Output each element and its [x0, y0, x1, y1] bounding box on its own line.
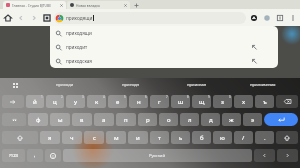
staticText: приискан [187, 82, 207, 88]
button[interactable]: в [72, 113, 92, 126]
button[interactable]: Comma [27, 149, 43, 162]
staticText: к [95, 98, 99, 106]
button[interactable]: ч [62, 131, 82, 144]
button[interactable]: Backspace [276, 95, 298, 108]
staticText: 6 [145, 95, 147, 99]
button[interactable]: приходящи [54, 12, 246, 24]
button[interactable]: а [94, 113, 114, 126]
button[interactable]: Tab [2, 95, 24, 108]
button[interactable]: Right [277, 149, 298, 162]
button[interactable]: п [116, 113, 136, 126]
button[interactable]: Search [264, 113, 298, 126]
button[interactable]: к [87, 95, 106, 108]
staticText: м [114, 134, 119, 142]
button[interactable]: Shift [2, 131, 38, 144]
button[interactable]: Left [254, 149, 275, 162]
button[interactable]: у [66, 95, 85, 108]
button[interactable]: я [40, 131, 60, 144]
staticText: 8 [187, 95, 189, 99]
staticText: Русский [149, 153, 166, 159]
button[interactable]: щ [192, 95, 211, 108]
button[interactable]: с [84, 131, 104, 144]
staticText: Новая вкладка [76, 3, 100, 7]
button[interactable]: Extensions [273, 11, 286, 24]
staticText: ь [179, 134, 183, 142]
button[interactable]: . [255, 131, 274, 144]
button[interactable]: приходит [50, 40, 278, 54]
button[interactable]: г [150, 95, 169, 108]
staticText: 0 [229, 95, 231, 99]
staticText: приходская [66, 58, 92, 64]
button[interactable]: Keyboard toolbar [0, 78, 31, 92]
staticText: приходи [56, 82, 74, 88]
button[interactable]: л [180, 113, 199, 126]
button[interactable]: Новая вкладка [67, 1, 130, 9]
staticText: щ [199, 98, 205, 106]
button[interactable]: New tab [132, 1, 140, 9]
staticText: ъ [263, 98, 267, 106]
staticText: с [93, 134, 96, 142]
button[interactable]: ш [171, 95, 190, 108]
button[interactable]: ю [213, 131, 232, 144]
staticText: приходит [66, 44, 88, 50]
button[interactable]: ъ [255, 95, 274, 108]
button[interactable]: Caps lock [2, 113, 26, 126]
button[interactable]: ы [50, 113, 70, 126]
staticText: . [264, 134, 266, 142]
staticText: 3 [82, 95, 84, 99]
button[interactable]: и [128, 131, 148, 144]
button[interactable]: More options [286, 11, 299, 24]
staticText: ш [178, 98, 184, 106]
button[interactable]: ц [46, 95, 64, 108]
button[interactable]: Русский [63, 149, 252, 162]
button[interactable]: р [138, 113, 157, 126]
button[interactable]: Account [247, 11, 260, 24]
button[interactable]: м [106, 131, 126, 144]
button[interactable]: Translate [260, 11, 273, 24]
button[interactable]: ф [28, 113, 48, 126]
button[interactable]: Forward [27, 11, 40, 24]
button[interactable]: ж [222, 113, 241, 126]
button[interactable]: н [129, 95, 148, 108]
staticText: 9 [208, 95, 210, 99]
staticText: з [221, 98, 224, 106]
button[interactable]: д [201, 113, 220, 126]
button[interactable]: ь [171, 131, 190, 144]
button[interactable]: пригодн [98, 78, 164, 92]
button[interactable]: й [26, 95, 44, 108]
button[interactable]: Back [14, 11, 27, 24]
staticText: й [33, 98, 37, 106]
button[interactable]: х [234, 95, 253, 108]
button[interactable]: т [150, 131, 169, 144]
staticText: б [200, 134, 204, 142]
button[interactable]: приискан [164, 78, 230, 92]
button[interactable]: Home [1, 11, 14, 24]
button[interactable]: з [213, 95, 232, 108]
staticText: 2 [61, 95, 63, 99]
staticText: л [188, 116, 192, 124]
button[interactable]: э [243, 113, 262, 126]
staticText: о [167, 116, 171, 124]
button[interactable]: б [192, 131, 211, 144]
staticText: ?123 [9, 153, 19, 159]
button[interactable]: е [108, 95, 127, 108]
button[interactable]: Reload [40, 11, 53, 24]
button[interactable]: приходская [50, 54, 278, 68]
button[interactable]: Emoji [45, 149, 61, 162]
button[interactable]: о [159, 113, 178, 126]
button[interactable]: / [234, 131, 253, 144]
staticText: / [242, 134, 245, 142]
staticText: 5 [124, 95, 126, 99]
button[interactable]: приходящи [50, 26, 278, 40]
button[interactable]: приходи [31, 78, 98, 92]
staticText: д [209, 116, 213, 124]
staticText: Главная - Студия BJTUBE [12, 3, 51, 7]
button[interactable]: Symbols [2, 149, 25, 162]
staticText: а [102, 116, 106, 124]
button[interactable]: Shift [276, 131, 298, 144]
button[interactable]: Главная - Студия BJTUBE [3, 1, 66, 9]
staticText: ц [53, 98, 57, 106]
staticText: приходящи [66, 15, 93, 21]
button[interactable]: приложения [230, 78, 296, 92]
staticText: ф [36, 116, 41, 124]
